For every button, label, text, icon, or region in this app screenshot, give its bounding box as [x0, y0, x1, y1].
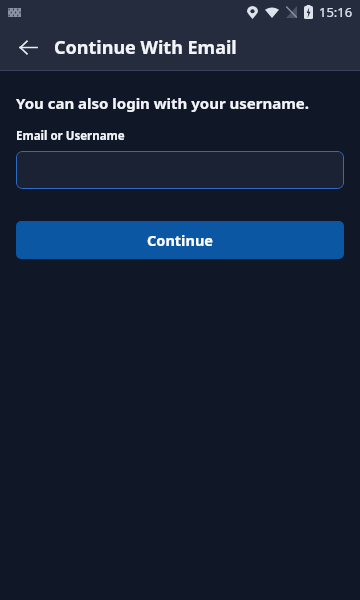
- staticText: Email or Username: [16, 128, 125, 144]
- staticText: 15:16: [319, 3, 353, 21]
- button[interactable]: Back: [12, 31, 44, 63]
- button[interactable]: Continue: [16, 221, 344, 259]
- staticText: You can also login with your username.: [16, 93, 310, 113]
- staticText: Continue With Email: [54, 35, 237, 60]
- button[interactable]: Email or Username input: [16, 151, 344, 189]
- staticText: Continue: [147, 230, 213, 250]
